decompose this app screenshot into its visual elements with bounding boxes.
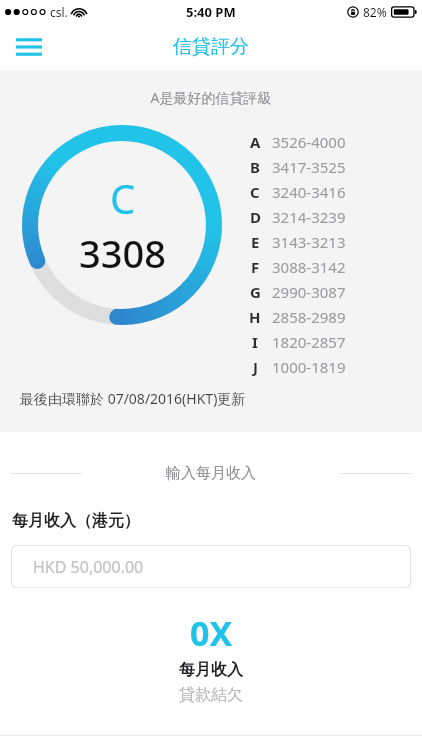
staticText: 5:40 PM xyxy=(186,3,236,21)
staticText: 3417-3525 xyxy=(272,157,346,177)
staticText: 3526-4000 xyxy=(272,132,346,152)
staticText: 信貸評分 xyxy=(173,35,249,59)
staticText: 最後由環聯於 07/08/2016(HKT)更新 xyxy=(20,389,246,408)
staticText: 3088-3142 xyxy=(272,257,346,277)
staticText: C xyxy=(110,171,136,225)
staticText: 每月收入 xyxy=(179,660,243,680)
staticText: F xyxy=(251,257,260,277)
staticText: 3308 xyxy=(79,227,166,279)
staticText: 1820-2857 xyxy=(272,332,346,352)
staticText: 1000-1819 xyxy=(272,357,346,377)
button[interactable]: HKD 50,000.00 xyxy=(11,545,411,588)
staticText: 2990-3087 xyxy=(272,282,346,302)
staticText: A xyxy=(250,132,261,152)
staticText: H xyxy=(249,307,261,327)
staticText: 3143-3213 xyxy=(272,232,346,252)
staticText: 0X xyxy=(190,610,233,656)
staticText: HKD 50,000.00 xyxy=(33,556,144,578)
staticText: 輸入每月收入 xyxy=(82,464,340,483)
staticText: A是最好的信貸評級 xyxy=(0,88,422,107)
staticText: I xyxy=(252,332,258,352)
button[interactable]: Menu xyxy=(6,24,52,70)
staticText: C xyxy=(250,182,260,202)
staticText: 3240-3416 xyxy=(272,182,346,202)
staticText: B xyxy=(250,157,260,177)
staticText: 82% xyxy=(363,4,387,20)
staticText: 貸款結欠 xyxy=(179,685,243,705)
staticText: D xyxy=(250,207,261,227)
staticText: J xyxy=(253,357,258,377)
staticText: 2858-2989 xyxy=(272,307,346,327)
staticText: G xyxy=(250,282,261,302)
staticText: csl. xyxy=(50,4,68,20)
staticText: 3214-3239 xyxy=(272,207,346,227)
staticText: 每月收入（港元） xyxy=(12,511,140,531)
staticText: E xyxy=(251,232,260,252)
